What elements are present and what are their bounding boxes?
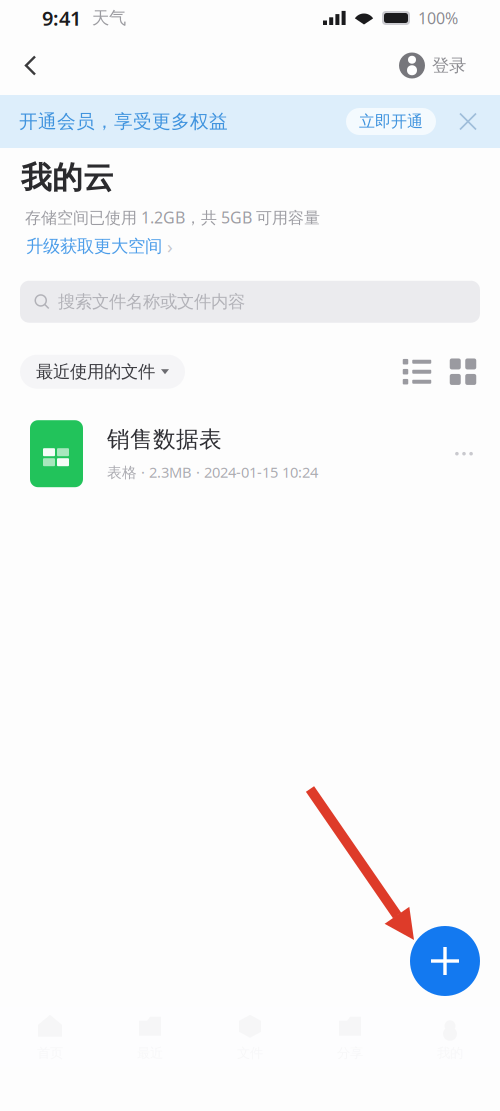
staticText: 表格 · 2.3MB · 2024-01-15 10:24 [107,462,318,482]
staticText: 搜索文件名称或文件内容 [58,291,245,312]
staticText: 升级获取更大空间 [26,236,162,257]
button[interactable]: 立即开通 [346,108,436,135]
button[interactable]: Dismiss [436,98,500,144]
button[interactable]: Grid view [441,350,485,394]
button[interactable]: 升级获取更大空间 [0,228,173,259]
staticText: 存储空间已使用 1.2GB，共 5GB 可用容量 [25,207,320,228]
staticText: 立即开通 [359,112,423,131]
staticText: 天气 [92,7,126,29]
staticText: 9:41 [42,5,81,31]
button[interactable]: 销售数据表 [0,394,500,490]
staticText: 销售数据表 [107,425,222,453]
button[interactable]: 登录 [393,43,472,87]
button[interactable]: 最近使用的文件 [20,355,185,389]
staticText: 最近使用的文件 [36,361,155,382]
button[interactable]: List view [393,350,441,394]
staticText: › [167,234,173,259]
staticText: 登录 [432,55,466,76]
staticText: 开通会员，享受更多权益 [19,110,228,133]
staticText: 我的云 [21,159,114,197]
staticText: 100% [418,7,458,29]
button[interactable]: New document [409,925,481,997]
button[interactable]: Back [9,43,53,87]
